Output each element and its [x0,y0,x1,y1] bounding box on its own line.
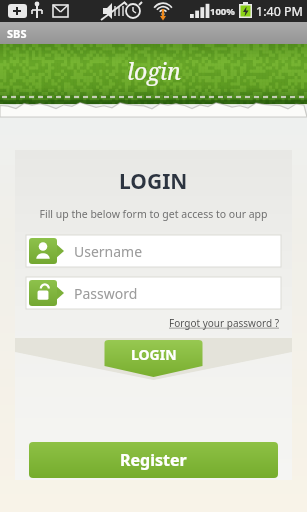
button[interactable]: Password [26,277,281,309]
staticText: 1:40 PM [256,3,303,20]
staticText: Username [74,242,143,261]
staticText: LOGIN [119,167,188,196]
staticText: 100% [210,5,235,18]
staticText: LOGIN [131,345,177,364]
staticText: Forgot your password ? [169,316,280,330]
staticText: login [127,55,181,86]
staticText: Password [74,284,138,303]
staticText: Fill up the below form to get access to … [39,207,268,221]
button[interactable]: Username [26,235,281,267]
button[interactable]: LOGIN [105,338,203,375]
staticText: Register [120,449,187,471]
button[interactable]: Forgot your password ? [169,316,280,330]
staticText: SBS [7,26,27,41]
button[interactable]: Register [29,442,278,478]
